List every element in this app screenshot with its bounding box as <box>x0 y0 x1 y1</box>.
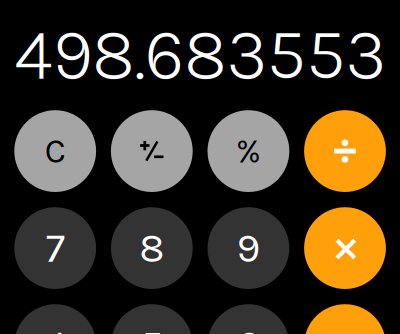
button[interactable]: Subtract <box>304 304 386 334</box>
button[interactable]: Percent <box>207 110 289 192</box>
staticText: 9 <box>236 224 260 272</box>
staticText: 4 <box>44 321 67 334</box>
staticText: 8 <box>139 224 164 272</box>
button[interactable]: 8 <box>111 207 193 289</box>
staticText: 6 <box>236 321 260 334</box>
button[interactable]: Clear <box>14 110 96 192</box>
button[interactable]: 5 <box>111 304 193 334</box>
button[interactable]: Divide <box>304 110 386 192</box>
staticText: % <box>236 131 261 171</box>
staticText: C <box>45 131 66 171</box>
button[interactable]: 9 <box>207 207 289 289</box>
staticText: 7 <box>46 224 65 272</box>
staticText: 498.683553 <box>14 13 387 96</box>
button[interactable]: 7 <box>14 207 96 289</box>
button[interactable]: Multiply <box>304 207 386 289</box>
button[interactable]: 4 <box>14 304 96 334</box>
staticText: 5 <box>140 321 163 334</box>
button[interactable]: 6 <box>207 304 289 334</box>
button[interactable]: Plus minus <box>111 110 193 192</box>
